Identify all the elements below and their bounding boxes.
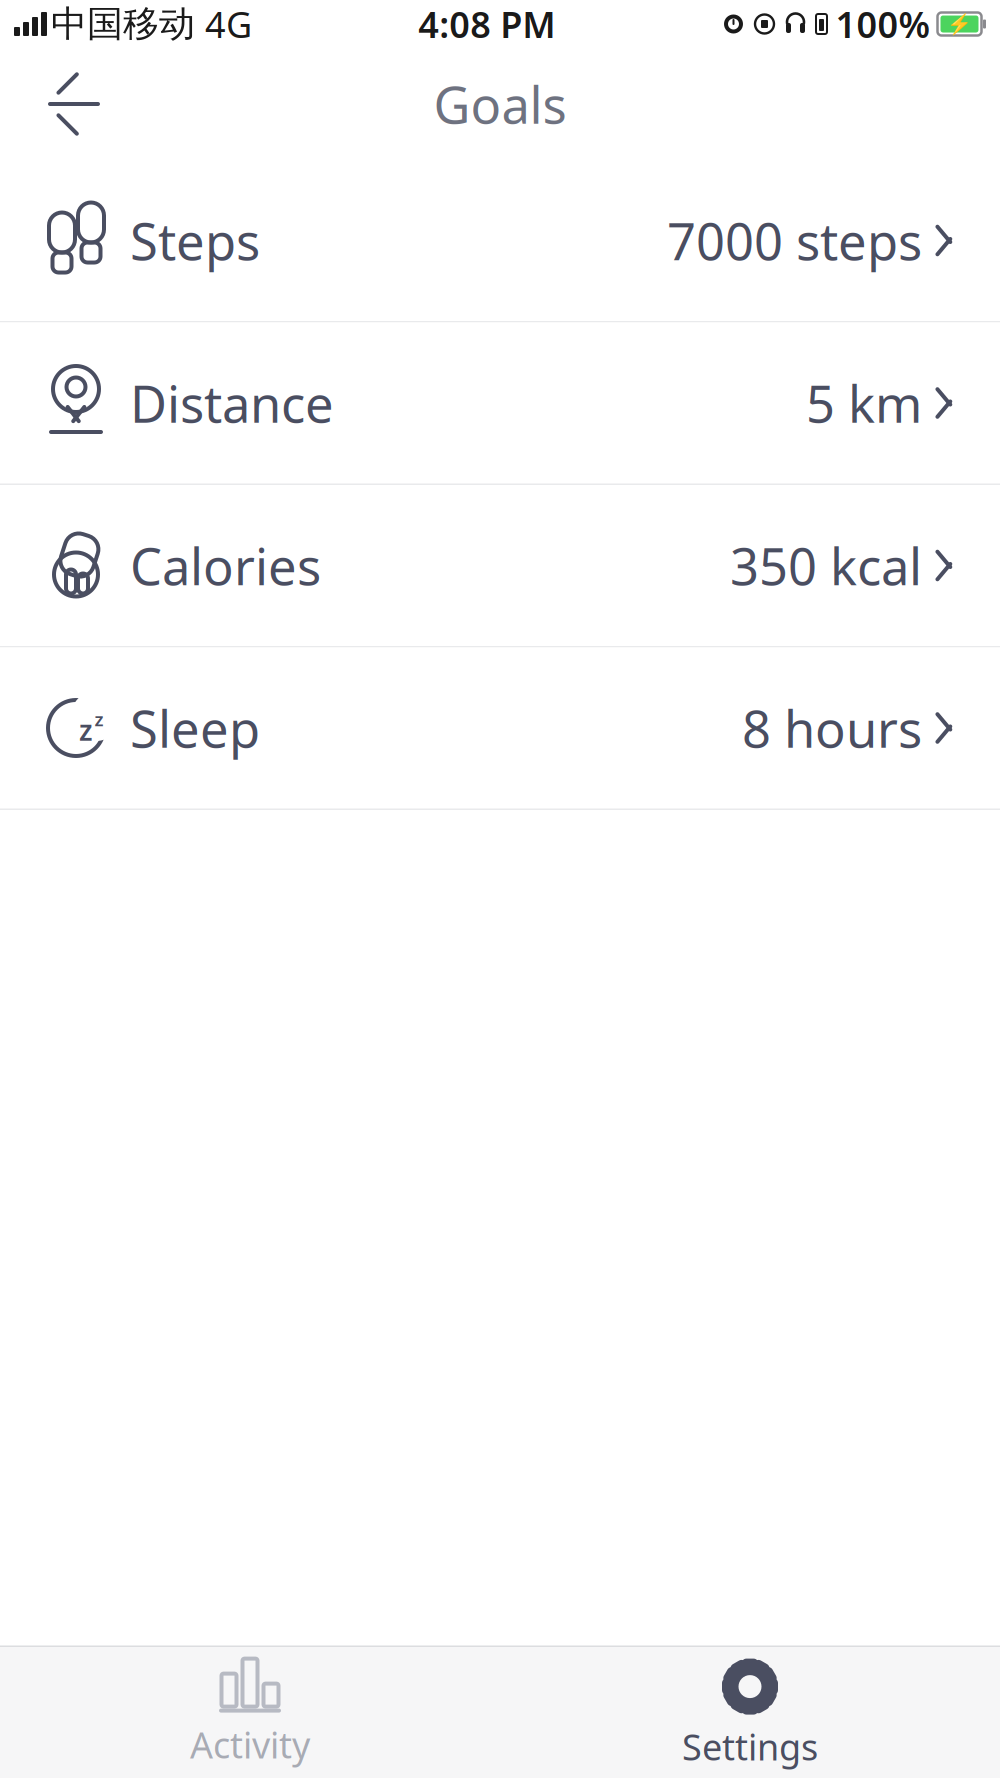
staticText: 中国移动 (51, 2, 195, 46)
staticText: 7000 steps (667, 207, 922, 274)
staticText: Sleep (130, 694, 260, 762)
button[interactable]: z (0, 647, 1000, 810)
staticText: Goals (433, 70, 566, 138)
button[interactable]: Back (36, 74, 112, 134)
staticText: z (94, 707, 103, 731)
staticText: Activity (190, 1721, 310, 1768)
button[interactable]: Distance (0, 322, 1000, 485)
button[interactable]: Calories (0, 485, 1000, 647)
staticText: Steps (130, 207, 260, 274)
button[interactable]: Steps (0, 160, 1000, 322)
staticText: 4G (205, 0, 252, 48)
staticText: 100% (835, 0, 930, 48)
staticText: Distance (130, 369, 334, 437)
button[interactable]: Activity (0, 1645, 500, 1778)
button[interactable]: Settings (500, 1643, 1000, 1778)
staticText: 4:08 PM (418, 0, 555, 48)
staticText: 8 hours (742, 694, 922, 762)
staticText: 350 kcal (730, 532, 922, 599)
staticText: z (79, 711, 93, 749)
staticText: Calories (130, 532, 321, 599)
staticText: ⚡ (947, 13, 972, 35)
staticText: 5 km (806, 369, 922, 437)
staticText: Settings (682, 1723, 818, 1770)
